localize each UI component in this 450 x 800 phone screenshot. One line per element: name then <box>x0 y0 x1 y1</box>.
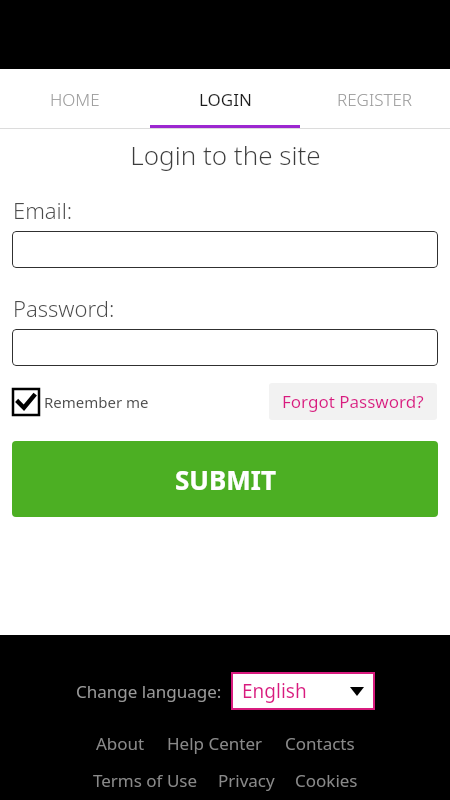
staticText: REGISTER <box>337 88 413 111</box>
button[interactable]: Remember me <box>13 389 149 415</box>
button[interactable]: Terms of Use <box>93 769 198 792</box>
staticText: Privacy <box>218 769 275 792</box>
button[interactable]: About <box>96 732 145 755</box>
button[interactable]: HOME <box>0 69 150 129</box>
button[interactable]: Cookies <box>295 769 358 792</box>
button[interactable]: REGISTER <box>300 69 450 129</box>
staticText: HOME <box>50 88 100 111</box>
button[interactable]: Help Center <box>167 732 263 755</box>
button[interactable]: Privacy <box>218 769 275 792</box>
staticText: Help Center <box>167 732 263 755</box>
button[interactable]: LOGIN <box>150 69 300 129</box>
staticText: Login to the site <box>130 137 321 172</box>
other: Remember me <box>13 389 39 415</box>
staticText: LOGIN <box>199 88 252 111</box>
button[interactable]: Contacts <box>285 732 355 755</box>
staticText: Contacts <box>285 732 355 755</box>
staticText: Remember me <box>44 392 149 412</box>
staticText: Forgot Password? <box>282 390 424 413</box>
button[interactable] <box>12 231 438 268</box>
staticText: SUBMIT <box>175 462 276 497</box>
staticText: Email: <box>13 195 73 225</box>
other: Open language list <box>350 687 364 696</box>
staticText: Terms of Use <box>93 769 198 792</box>
staticText: English <box>242 678 307 704</box>
staticText: Password: <box>13 293 115 323</box>
button[interactable] <box>12 329 438 366</box>
button[interactable]: English <box>231 672 375 710</box>
staticText: Cookies <box>295 769 358 792</box>
staticText: About <box>96 732 145 755</box>
button[interactable]: SUBMIT <box>12 441 438 517</box>
staticText: Change language: <box>76 680 222 703</box>
button[interactable]: Forgot Password? <box>269 383 437 420</box>
